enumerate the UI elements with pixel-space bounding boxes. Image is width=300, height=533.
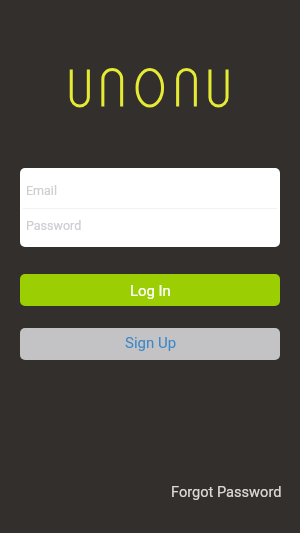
staticText: Email <box>26 183 57 198</box>
button[interactable]: Password <box>20 209 280 247</box>
staticText: Log In <box>130 282 171 299</box>
staticText: Forgot Password <box>171 483 282 500</box>
staticText: Sign Up <box>125 334 177 352</box>
button[interactable]: Sign Up <box>20 328 280 360</box>
button[interactable]: Email <box>20 168 280 208</box>
staticText: Password <box>26 218 82 233</box>
button[interactable]: Log In <box>20 274 280 306</box>
button[interactable]: Forgot Password <box>167 480 286 503</box>
